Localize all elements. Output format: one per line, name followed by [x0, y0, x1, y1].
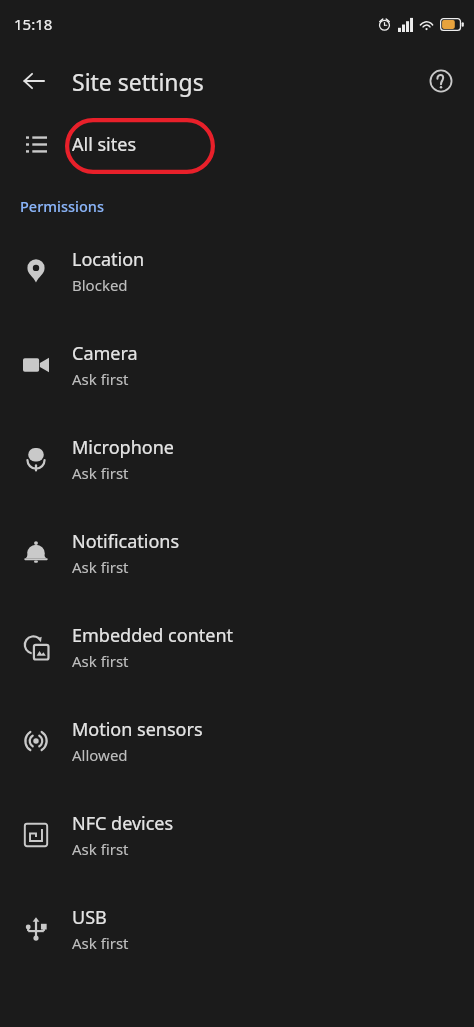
button[interactable]: Embedded content — [0, 600, 474, 694]
staticText: Location — [72, 247, 145, 272]
staticText: Permissions — [20, 196, 104, 216]
staticText: Ask first — [72, 557, 129, 577]
staticText: Notifications — [72, 529, 180, 554]
button[interactable]: Camera — [0, 318, 474, 412]
button[interactable]: NFC devices — [0, 788, 474, 882]
button[interactable]: Location — [0, 224, 474, 318]
staticText: Motion sensors — [72, 717, 203, 742]
staticText: USB — [72, 905, 107, 930]
staticText: Microphone — [72, 435, 174, 460]
button[interactable]: All sites — [0, 114, 474, 174]
button[interactable]: Notifications — [0, 506, 474, 600]
button[interactable]: Microphone — [0, 412, 474, 506]
staticText: Site settings — [72, 66, 204, 97]
staticText: All sites — [72, 132, 137, 157]
button[interactable]: Help — [418, 58, 464, 104]
button[interactable]: Back — [10, 57, 58, 105]
button[interactable]: USB — [0, 882, 474, 976]
staticText: Blocked — [72, 275, 128, 295]
button[interactable]: Motion sensors — [0, 694, 474, 788]
staticText: Ask first — [72, 463, 129, 483]
staticText: 15:18 — [14, 14, 53, 34]
staticText: Camera — [72, 341, 138, 366]
staticText: Ask first — [72, 839, 129, 859]
staticText: Ask first — [72, 369, 129, 389]
staticText: NFC devices — [72, 811, 174, 836]
staticText: Embedded content — [72, 623, 234, 648]
staticText: Ask first — [72, 933, 129, 953]
staticText: Ask first — [72, 651, 129, 671]
staticText: Allowed — [72, 745, 128, 765]
